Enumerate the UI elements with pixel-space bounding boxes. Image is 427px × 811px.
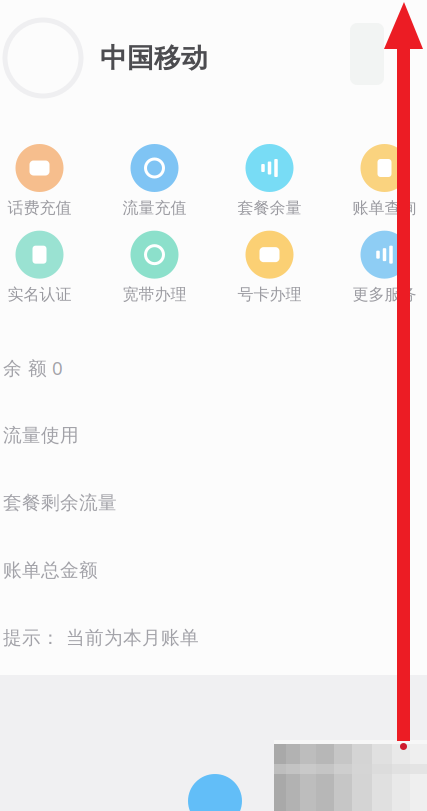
button[interactable]: 中国移动 [5, 20, 427, 96]
staticText: 更多服务 [352, 285, 416, 304]
button[interactable]: 实名认证 [0, 231, 95, 304]
staticText: 宽带办理 [122, 285, 186, 304]
staticText: 中国移动 [100, 42, 208, 74]
button[interactable]: 套餐余量 [213, 144, 325, 218]
button[interactable]: 提示： 当前为本月账单 [0, 604, 427, 671]
staticText: 提示： 当前为本月账单 [3, 626, 199, 649]
button[interactable]: 宽带办理 [98, 231, 210, 304]
staticText: 套餐余量 [237, 198, 301, 218]
staticText: 流量使用 [3, 424, 79, 447]
button[interactable]: 账单查询 [328, 144, 427, 218]
staticText: 套餐剩余流量 [3, 491, 117, 514]
staticText: 话费充值 [7, 198, 71, 218]
staticText: 流量充值 [122, 198, 186, 218]
button[interactable]: 号卡办理 [213, 231, 325, 304]
staticText: 实名认证 [7, 285, 71, 304]
button[interactable]: 流量充值 [98, 144, 210, 218]
staticText: 账单总金额 [3, 559, 98, 582]
button[interactable]: 余 额 0 [0, 334, 427, 401]
button[interactable]: 账单总金额 [0, 536, 427, 604]
button[interactable]: 套餐剩余流量 [0, 469, 427, 536]
staticText: 号卡办理 [237, 285, 301, 304]
staticText: 账单查询 [352, 198, 416, 218]
button[interactable]: Compose [188, 774, 242, 811]
button[interactable]: 话费充值 [0, 144, 95, 218]
staticText: 余 额 0 [3, 355, 63, 380]
button[interactable]: 更多服务 [328, 231, 427, 304]
button[interactable]: 流量使用 [0, 401, 427, 469]
